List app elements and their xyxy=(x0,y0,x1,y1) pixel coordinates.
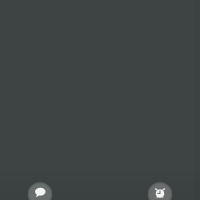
button[interactable]: Messages xyxy=(27,182,52,200)
button[interactable]: Alarm xyxy=(147,182,172,200)
